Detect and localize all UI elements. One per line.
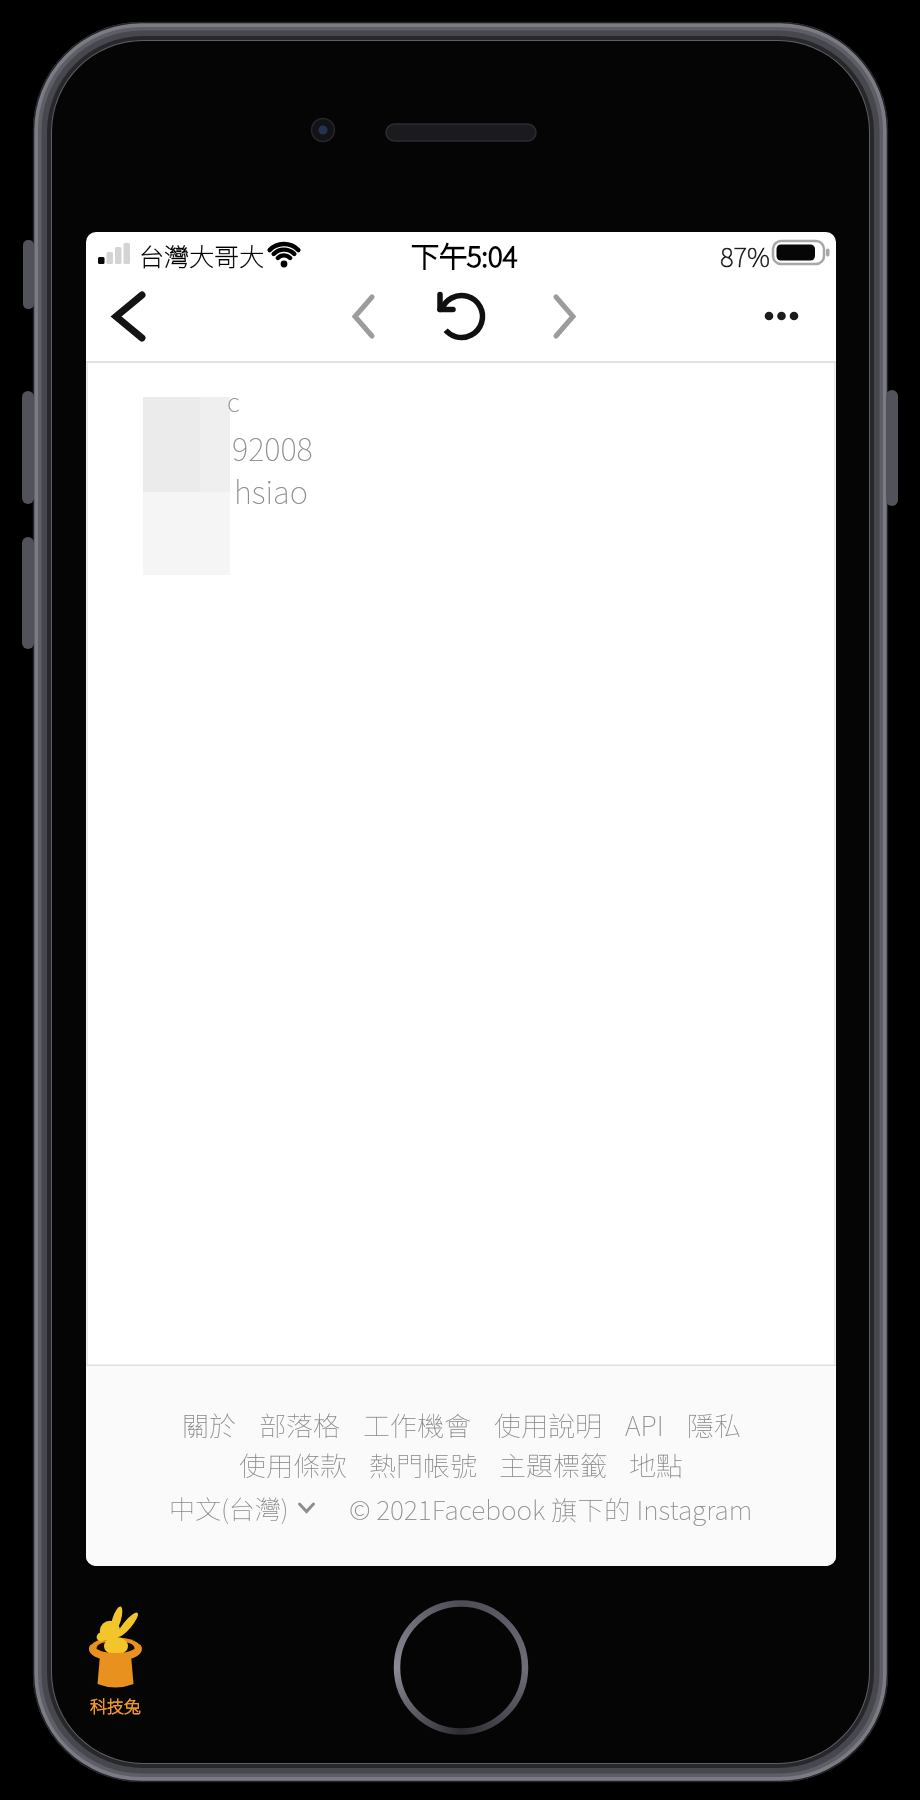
button[interactable]: 關於: [182, 1405, 236, 1444]
staticText: hsiao: [234, 468, 308, 513]
staticText: 中文(台灣): [169, 1489, 289, 1527]
button[interactable]: [546, 286, 594, 346]
staticText: c: [227, 382, 240, 420]
staticText: 部落格: [259, 1405, 340, 1444]
button[interactable]: [744, 292, 816, 340]
staticText: 87%: [720, 237, 770, 275]
staticText: © 2021Facebook 旗下的 Instagram: [349, 1489, 753, 1527]
staticText: 關於: [182, 1405, 236, 1444]
staticText: 台灣大哥大: [139, 237, 265, 273]
staticText: 使用說明: [494, 1405, 602, 1444]
button[interactable]: 部落格: [259, 1405, 340, 1444]
staticText: 隱私: [687, 1405, 741, 1444]
staticText: 92008: [232, 425, 313, 470]
staticText: 科技兔: [90, 1693, 141, 1718]
button[interactable]: 中文(台灣): [169, 1489, 315, 1527]
button[interactable]: 主題標籤: [499, 1445, 607, 1484]
button[interactable]: [338, 286, 386, 346]
button[interactable]: 地點: [629, 1445, 683, 1484]
button[interactable]: 工作機會: [363, 1405, 471, 1444]
staticText: 科技兔: [90, 1693, 141, 1718]
staticText: 熱門帳號: [369, 1445, 477, 1484]
button[interactable]: 使用條款: [239, 1445, 347, 1484]
staticText: API: [625, 1405, 664, 1444]
staticText: 地點: [629, 1445, 683, 1484]
staticText: 主題標籤: [499, 1445, 607, 1484]
button[interactable]: [394, 1600, 528, 1734]
button[interactable]: [99, 281, 155, 351]
button[interactable]: 隱私: [687, 1405, 741, 1444]
button[interactable]: [431, 286, 493, 348]
staticText: 下午5:04: [411, 235, 518, 276]
staticText: 下午5:04: [411, 235, 518, 276]
button[interactable]: 熱門帳號: [369, 1445, 477, 1484]
staticText: 87%: [720, 237, 770, 275]
staticText: 台灣大哥大: [139, 237, 265, 273]
button[interactable]: 使用說明: [494, 1405, 602, 1444]
staticText: 工作機會: [363, 1405, 471, 1444]
staticText: 使用條款: [239, 1445, 347, 1484]
button[interactable]: API: [625, 1405, 664, 1444]
